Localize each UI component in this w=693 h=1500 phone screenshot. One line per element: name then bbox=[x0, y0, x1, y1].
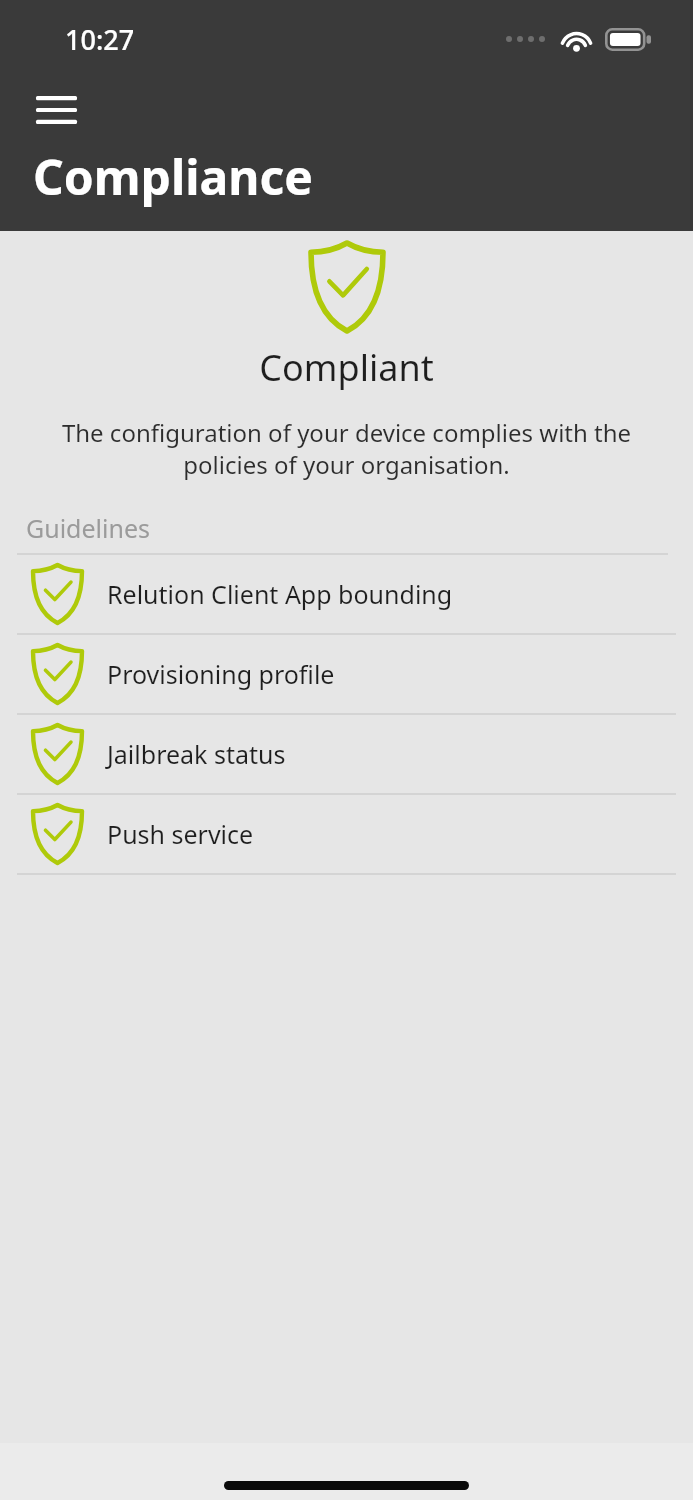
staticText: Relution Client App bounding bbox=[107, 577, 453, 611]
staticText: Compliant bbox=[259, 343, 434, 392]
staticText: Guidelines bbox=[26, 511, 151, 545]
staticText: Push service bbox=[107, 817, 254, 851]
button[interactable]: Provisioning profile bbox=[0, 635, 693, 713]
button[interactable]: Open navigation menu bbox=[22, 84, 90, 136]
button[interactable]: Relution Client App bounding bbox=[0, 555, 693, 633]
staticText: Jailbreak status bbox=[107, 737, 286, 771]
staticText: 10:27 bbox=[65, 21, 135, 58]
staticText: The configuration of your device complie… bbox=[36, 416, 657, 481]
button[interactable]: Push service bbox=[0, 795, 693, 873]
button[interactable]: Jailbreak status bbox=[0, 715, 693, 793]
staticText: Compliance bbox=[33, 144, 313, 209]
staticText: Provisioning profile bbox=[107, 657, 335, 691]
